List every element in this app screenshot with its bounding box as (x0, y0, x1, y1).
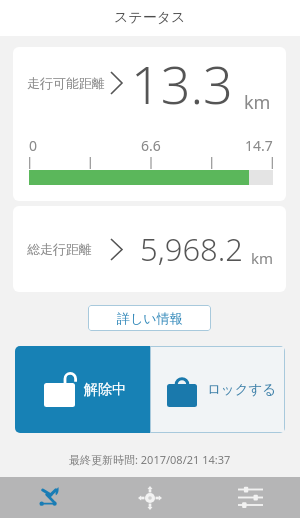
staticText: ロックする (207, 381, 277, 398)
staticText: km (244, 90, 271, 115)
staticText: 13.3 (131, 48, 233, 119)
staticText: 14.7 (245, 136, 273, 155)
staticText: 総走行距離 (27, 241, 92, 257)
staticText: 解除中 (84, 381, 126, 399)
staticText: 走行可能距離 (27, 75, 105, 91)
button[interactable]: 詳しい情報 (88, 305, 211, 331)
staticText: 6.6 (141, 136, 161, 155)
button[interactable]: 解除中 (15, 346, 150, 433)
button[interactable]: Find my scooter (100, 477, 200, 518)
staticText: km (251, 248, 274, 268)
staticText: 5,968.2 (140, 228, 244, 270)
staticText: 0 (29, 136, 38, 155)
staticText: 最終更新時間: 2017/08/21 14:37 (69, 452, 231, 467)
staticText: ステータス (114, 9, 186, 27)
button[interactable]: Settings (200, 477, 300, 518)
button[interactable]: Vehicle status (0, 477, 100, 518)
staticText: 詳しい情報 (117, 310, 183, 326)
button[interactable]: ロックする (150, 346, 285, 433)
